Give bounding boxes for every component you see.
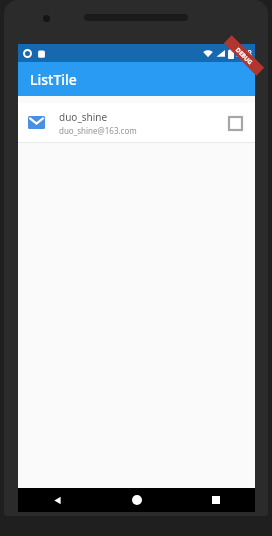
staticText: 9:48 bbox=[236, 48, 252, 59]
button[interactable]: Select duo_shine bbox=[225, 113, 245, 133]
button[interactable]: Home bbox=[97, 488, 176, 512]
staticText: duo_shine bbox=[59, 110, 108, 124]
staticText: ListTile bbox=[30, 70, 77, 89]
staticText: duo_shine@163.com bbox=[59, 125, 137, 136]
button[interactable]: Recent apps bbox=[176, 488, 255, 512]
button[interactable]: duo_shine bbox=[18, 103, 255, 142]
staticText: DEBUG bbox=[234, 46, 254, 66]
button[interactable]: Back bbox=[18, 488, 97, 512]
